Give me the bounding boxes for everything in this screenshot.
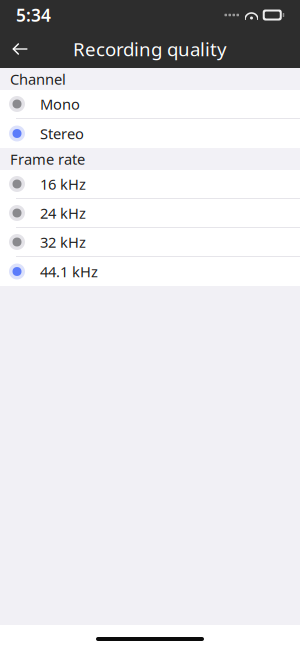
staticText: 32 kHz: [40, 232, 86, 252]
staticText: 24 kHz: [40, 203, 86, 223]
staticText: Stereo: [40, 124, 84, 143]
button[interactable]: Stereo: [0, 119, 300, 148]
staticText: 5:34: [16, 3, 51, 26]
button[interactable]: 44.1 kHz: [0, 257, 300, 286]
staticText: Frame rate: [10, 149, 85, 169]
staticText: Mono: [40, 94, 80, 114]
button[interactable]: 32 kHz: [0, 228, 300, 257]
staticText: 16 kHz: [40, 174, 86, 194]
button[interactable]: Back: [0, 30, 40, 68]
staticText: Recording quality: [73, 37, 227, 61]
button[interactable]: Mono: [0, 90, 300, 119]
button[interactable]: 16 kHz: [0, 170, 300, 199]
staticText: Channel: [10, 69, 66, 89]
staticText: 44.1 kHz: [40, 262, 98, 281]
button[interactable]: 24 kHz: [0, 199, 300, 228]
